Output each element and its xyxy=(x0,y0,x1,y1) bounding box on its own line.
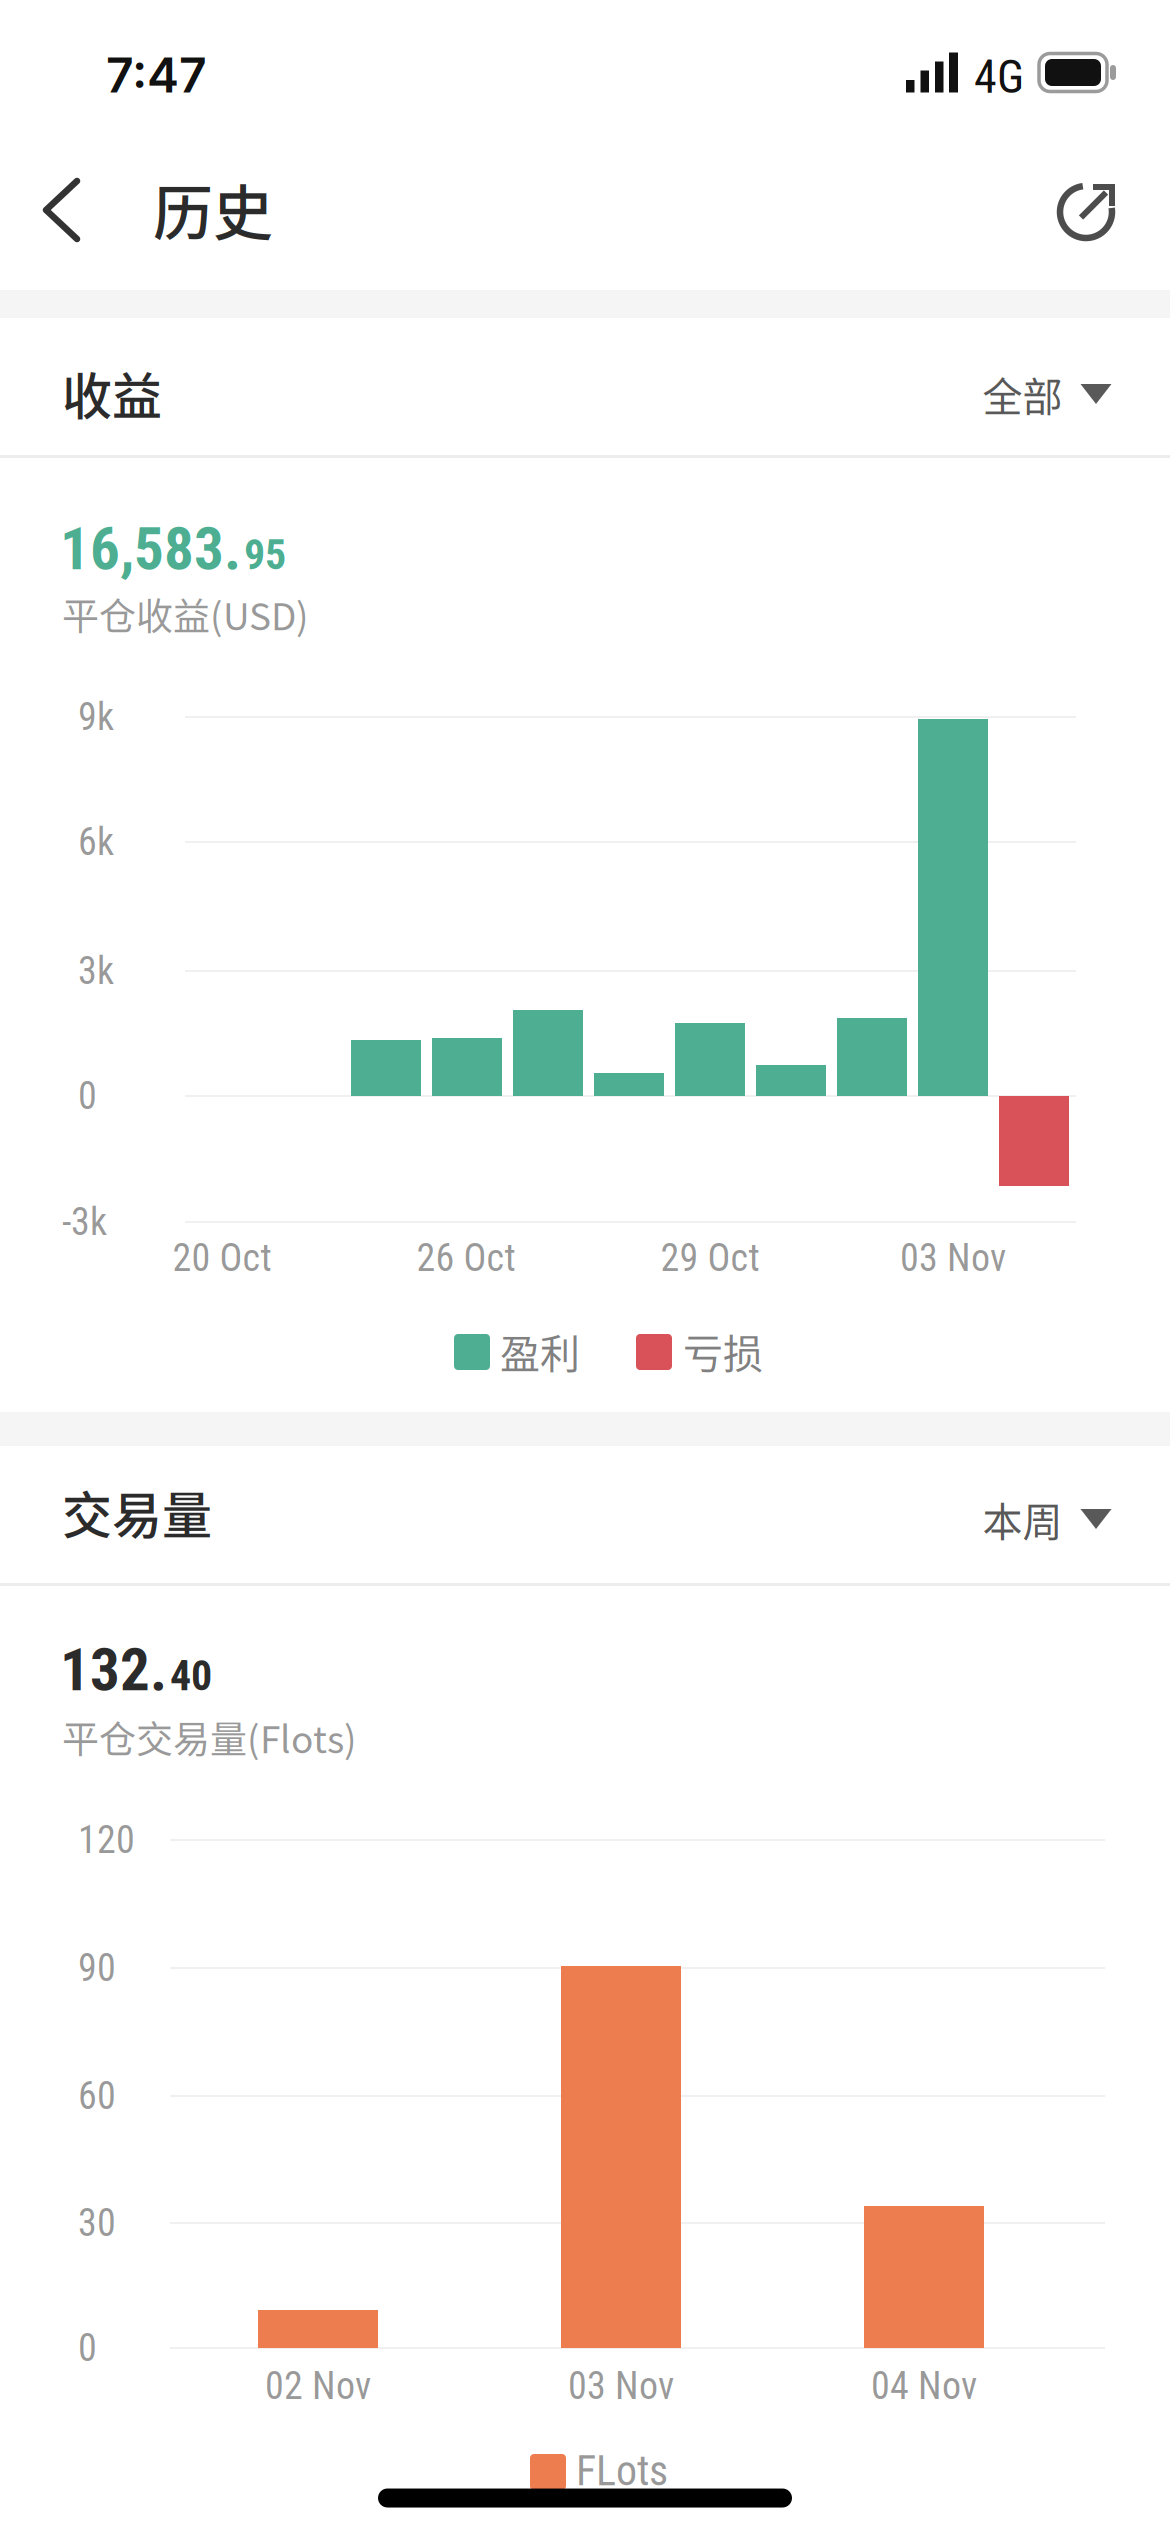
staticText: 02 Nov xyxy=(265,2364,371,2408)
staticText: 120 xyxy=(78,1818,135,1862)
staticText: FLots xyxy=(576,2446,668,2496)
staticText: 30 xyxy=(78,2201,116,2245)
staticText: 3k xyxy=(78,949,114,993)
button[interactable]: 本周 xyxy=(982,1490,1111,1548)
staticText: 交易量 xyxy=(62,1476,212,1548)
staticText: 平仓交易量(Flots) xyxy=(62,1710,357,1764)
staticText: 0 xyxy=(78,2326,97,2370)
staticText: 盈利 xyxy=(500,1322,580,1380)
staticText: 132. xyxy=(60,1635,167,1704)
staticText: 40 xyxy=(170,1651,212,1701)
button[interactable]: 全部 xyxy=(982,365,1111,423)
staticText: 29 Oct xyxy=(660,1236,759,1280)
staticText: 16,583. xyxy=(60,514,241,583)
staticText: 60 xyxy=(78,2074,116,2118)
staticText: 平仓收益(USD) xyxy=(62,587,309,641)
staticText: 本周 xyxy=(982,1490,1062,1548)
staticText: 收益 xyxy=(62,357,162,429)
button[interactable]: Back xyxy=(16,165,106,255)
button[interactable]: Share xyxy=(1036,161,1136,261)
staticText: -3k xyxy=(62,1200,107,1244)
staticText: 95 xyxy=(244,530,286,580)
staticText: 4G xyxy=(974,50,1024,104)
staticText: 全部 xyxy=(982,365,1062,423)
staticText: 04 Nov xyxy=(871,2364,977,2408)
staticText: 6k xyxy=(78,820,114,864)
staticText: 9k xyxy=(78,695,114,739)
staticText: 历史 xyxy=(153,166,273,252)
staticText: 0 xyxy=(78,1074,97,1118)
staticText: 90 xyxy=(78,1946,116,1990)
staticText: 7:47 xyxy=(106,46,207,104)
staticText: 03 Nov xyxy=(900,1236,1006,1280)
staticText: 20 Oct xyxy=(172,1236,271,1280)
staticText: 亏损 xyxy=(683,1322,763,1380)
staticText: 03 Nov xyxy=(568,2364,674,2408)
staticText: 26 Oct xyxy=(416,1236,515,1280)
